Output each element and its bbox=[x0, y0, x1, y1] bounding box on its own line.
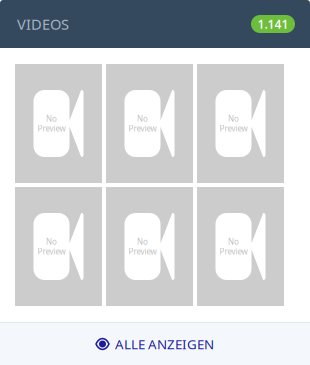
staticText: No bbox=[137, 236, 148, 247]
button[interactable]: Video bbox=[106, 187, 193, 306]
button[interactable]: Video bbox=[15, 187, 102, 306]
staticText: No bbox=[46, 236, 57, 247]
staticText: Preview bbox=[219, 123, 247, 134]
button[interactable]: Video bbox=[106, 64, 193, 183]
button[interactable]: Video bbox=[197, 64, 284, 183]
staticText: No bbox=[228, 236, 239, 247]
staticText: 1.141 bbox=[257, 16, 288, 32]
staticText: No bbox=[137, 113, 148, 124]
staticText: ALLE ANZEIGEN bbox=[115, 335, 214, 353]
button[interactable]: Video bbox=[15, 64, 102, 183]
staticText: Preview bbox=[128, 246, 156, 257]
button[interactable]: ALLE ANZEIGEN bbox=[0, 323, 310, 365]
staticText: Preview bbox=[37, 123, 65, 134]
staticText: VIDEOS bbox=[17, 14, 69, 34]
staticText: Preview bbox=[128, 123, 156, 134]
button[interactable]: Video bbox=[197, 187, 284, 306]
staticText: No bbox=[228, 113, 239, 124]
staticText: Preview bbox=[37, 246, 65, 257]
staticText: Preview bbox=[219, 246, 247, 257]
staticText: No bbox=[46, 113, 57, 124]
